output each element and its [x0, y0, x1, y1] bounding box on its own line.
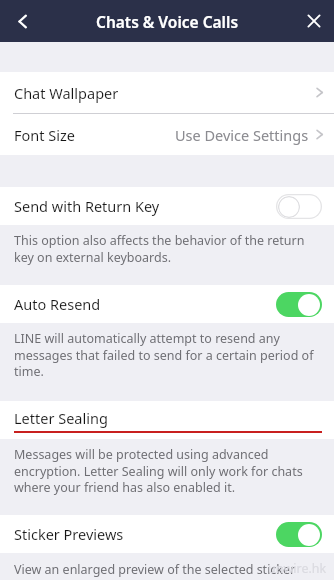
staticText: Send with Return Key	[14, 196, 160, 216]
button[interactable]: Letter Sealing	[0, 401, 334, 439]
staticText: Chats & Voice Calls	[96, 11, 239, 32]
staticText: Font Size	[14, 125, 75, 145]
button[interactable]: Switch on	[276, 522, 322, 547]
staticText: This option also affects the behavior of…	[14, 232, 314, 265]
button[interactable]: Font Size	[0, 114, 334, 155]
button[interactable]: Close	[294, 0, 334, 42]
staticText: Sticker Previews	[14, 524, 124, 544]
button[interactable]: Sticker Previews	[0, 515, 334, 553]
staticText: Use Device Settings	[175, 125, 309, 145]
staticText: Auto Resend	[14, 294, 101, 314]
button[interactable]: Send with Return Key	[0, 187, 334, 225]
staticText: View an enlarged preview of the selected…	[14, 561, 314, 580]
staticText: Chat Wallpaper	[14, 83, 119, 103]
button[interactable]: Switch on	[276, 292, 322, 317]
staticText: LINE will automatically attempt to resen…	[14, 330, 314, 379]
staticText: Letter Sealing	[14, 408, 108, 428]
button[interactable]: Switch off	[276, 194, 322, 219]
staticText: unwire.hk	[268, 560, 327, 577]
staticText: Messages will be protected using advance…	[14, 446, 314, 495]
button[interactable]: Chat Wallpaper	[0, 72, 334, 113]
button[interactable]: Auto Resend	[0, 285, 334, 323]
button[interactable]: Back	[0, 0, 44, 42]
